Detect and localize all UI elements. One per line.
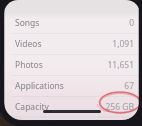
staticText: Applications (15, 80, 64, 92)
button[interactable]: Photos (4, 54, 140, 75)
staticText: 0 (129, 17, 134, 29)
staticText: Songs (15, 17, 40, 29)
staticText: 256 GB (105, 101, 134, 113)
button[interactable]: Videos (4, 33, 140, 54)
staticText: Capacity (15, 101, 49, 113)
other: Highlighted capacity 256 GB (0, 0, 142, 126)
button[interactable]: Capacity (4, 96, 140, 117)
button[interactable]: Total (4, 117, 140, 120)
staticText: Videos (15, 38, 42, 50)
staticText: 1,091 (112, 38, 134, 50)
button[interactable]: Songs (4, 12, 140, 33)
staticText: Photos (15, 59, 43, 71)
staticText: 11,651 (107, 59, 134, 71)
staticText: 67 (124, 80, 134, 92)
button[interactable]: Applications (4, 75, 140, 96)
